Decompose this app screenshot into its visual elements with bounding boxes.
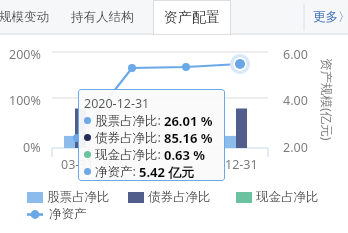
staticText: 12-31	[225, 156, 258, 173]
staticText: 100%	[9, 92, 41, 109]
staticText: 6.00	[283, 46, 308, 63]
staticText: 股票占净比:	[95, 112, 161, 129]
staticText: 4.00	[283, 92, 308, 109]
staticText: 资产规模(亿元)	[318, 58, 335, 141]
staticText: 持有人结构	[71, 9, 134, 25]
button[interactable]: 债券占净比	[128, 189, 211, 205]
staticText: 资产配置	[164, 9, 220, 27]
button[interactable]: 股票占净比	[27, 189, 110, 205]
staticText: 债券占净比	[148, 189, 211, 205]
button[interactable]: 资产配置	[153, 0, 231, 35]
staticText: 200%	[9, 46, 41, 63]
staticText: 0.63 %	[164, 146, 206, 163]
button[interactable]: 更多〉	[313, 0, 348, 34]
staticText: 85.16 %	[164, 129, 213, 146]
staticText: 股票占净比	[47, 189, 110, 205]
staticText: 26.01 %	[164, 112, 213, 129]
staticText: 现金占净比	[256, 189, 319, 205]
staticText: 更多〉	[313, 9, 348, 25]
staticText: 2020-12-31	[84, 95, 150, 112]
staticText: 现金占净比:	[95, 146, 161, 163]
staticText: 5.42 亿元	[139, 163, 195, 180]
button[interactable]: 持有人结构	[70, 0, 134, 34]
staticText: 2.00	[283, 139, 308, 156]
staticText: 规模变动	[0, 9, 49, 25]
staticText: 债券占净比:	[95, 129, 161, 146]
button[interactable]: 现金占净比	[236, 189, 319, 205]
staticText: 0%	[23, 139, 41, 156]
staticText: 净资产	[49, 206, 87, 222]
button[interactable]: 规模变动	[0, 0, 51, 34]
staticText: 净资产:	[95, 163, 136, 180]
button[interactable]: 净资产	[27, 206, 87, 222]
staticText: 03-31	[61, 156, 94, 173]
